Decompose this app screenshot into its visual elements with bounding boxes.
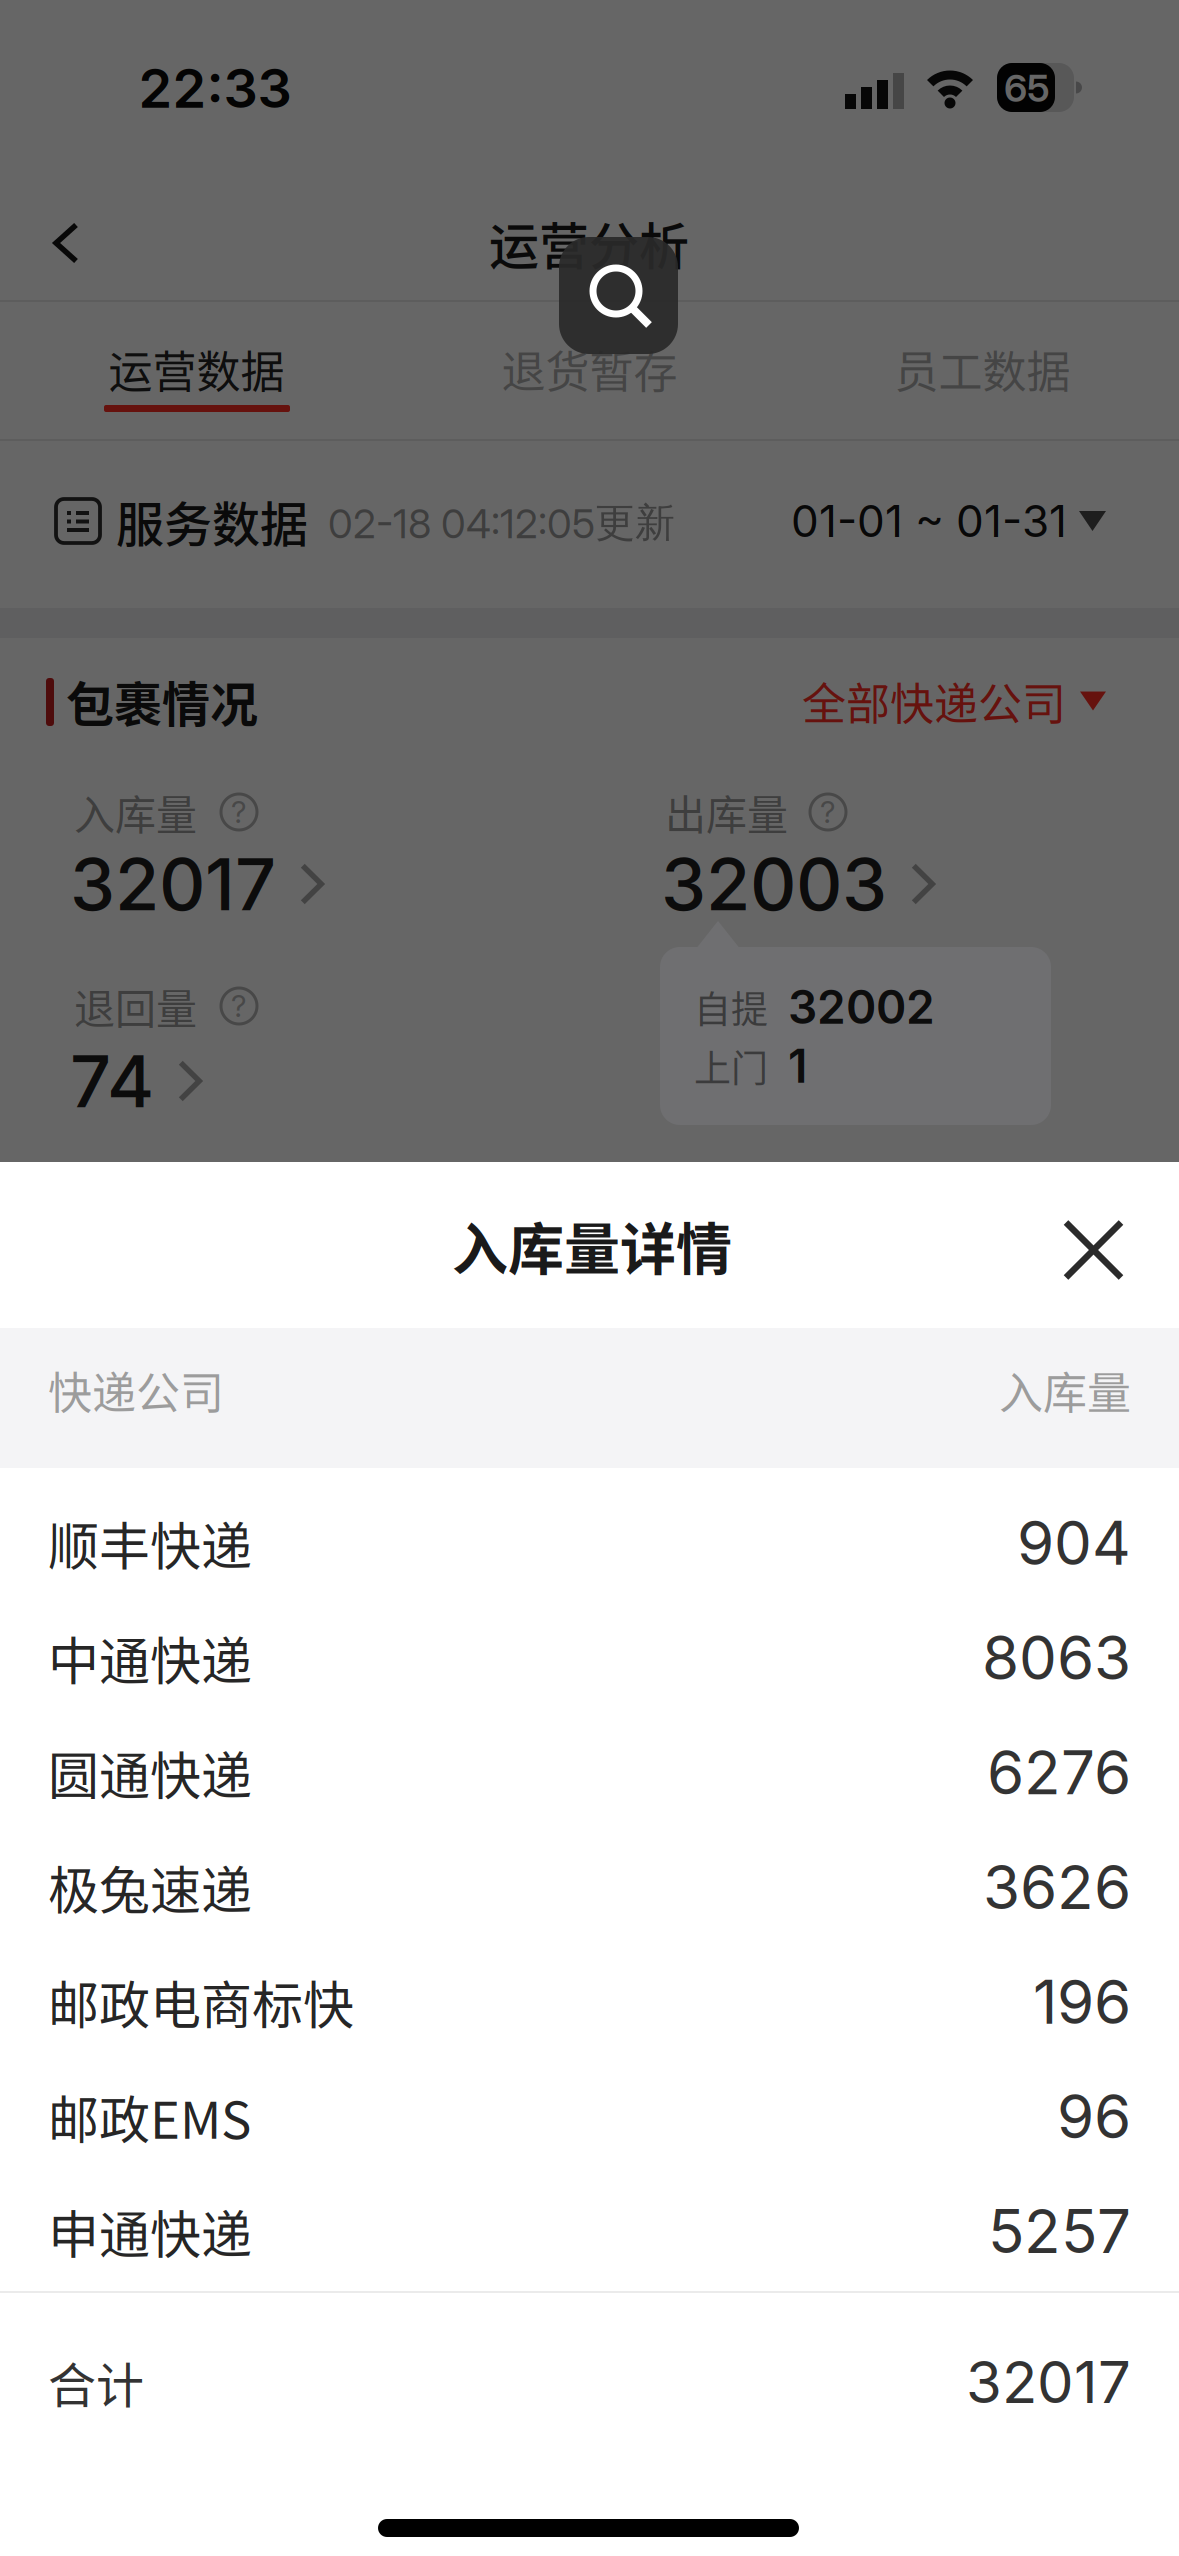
staticText: ? — [820, 794, 836, 830]
staticText: 邮政EMS — [48, 2080, 251, 2153]
button[interactable]: 返回 — [39, 208, 93, 278]
staticText: 出库量 — [665, 782, 788, 842]
button[interactable]: 说明 — [807, 791, 849, 833]
staticText: 32017 — [70, 840, 276, 927]
staticText: 运营分析 — [489, 207, 689, 279]
staticText: 3626 — [983, 1851, 1131, 1923]
staticText: 全部快递公司 — [802, 669, 1066, 733]
staticText: 自提 — [694, 980, 768, 1034]
staticText: ? — [231, 794, 247, 830]
staticText: 邮政电商标快 — [48, 1965, 354, 2039]
button[interactable]: 搜索 — [559, 237, 678, 354]
button[interactable]: 说明 — [218, 985, 260, 1027]
button[interactable]: 说明 — [218, 791, 260, 833]
staticText: 极兔速递 — [48, 1850, 252, 1924]
staticText: 中通快递 — [48, 1621, 252, 1695]
staticText: 1 — [788, 1038, 807, 1094]
staticText: 22:33 — [138, 55, 291, 121]
staticText: 65 — [1004, 65, 1050, 111]
staticText: 196 — [1033, 1965, 1131, 2038]
button[interactable]: 退货暂存 — [439, 304, 739, 434]
staticText: 入库量 — [999, 1358, 1131, 1422]
staticText: 32017 — [966, 2347, 1131, 2417]
staticText: 96 — [1057, 2080, 1131, 2153]
staticText: 顺丰快递 — [48, 1506, 252, 1580]
staticText: 904 — [1017, 1507, 1131, 1579]
staticText: 74 — [70, 1037, 154, 1124]
staticText: 8063 — [982, 1621, 1131, 1694]
staticText: 32003 — [661, 840, 887, 927]
button[interactable]: 32017 — [70, 819, 490, 949]
staticText: 快递公司 — [48, 1358, 224, 1422]
staticText: 32002 — [788, 979, 935, 1035]
staticText: 圆通快递 — [48, 1735, 252, 1809]
staticText: 入库量详情 — [452, 1204, 732, 1286]
staticText: ? — [231, 988, 247, 1024]
button[interactable]: 关闭 — [1054, 1210, 1133, 1289]
staticText: 退货暂存 — [501, 337, 677, 401]
staticText: 01-01 ~ 01-31 — [791, 494, 1067, 548]
staticText: 上门 — [694, 1039, 768, 1093]
button[interactable]: 01-01 ~ 01-31 — [686, 461, 1106, 581]
staticText: 服务数据 — [116, 486, 308, 556]
staticText: 02-18 04:12:05更新 — [328, 498, 675, 548]
staticText: 员工数据 — [894, 337, 1070, 401]
button[interactable]: 员工数据 — [832, 304, 1132, 434]
staticText: 合计 — [48, 2347, 144, 2417]
button[interactable]: 74 — [70, 1016, 490, 1146]
staticText: 申通快递 — [48, 2194, 252, 2268]
staticText: 包裹情况 — [66, 666, 258, 736]
button[interactable]: 运营数据 — [46, 304, 346, 434]
staticText: 运营数据 — [108, 337, 284, 401]
button[interactable]: 全部快递公司 — [646, 641, 1106, 761]
staticText: 入库量 — [74, 782, 197, 842]
button[interactable]: 32003 — [661, 819, 1081, 949]
staticText: 6276 — [987, 1736, 1131, 1809]
staticText: 5257 — [988, 2195, 1131, 2267]
staticText: 退回量 — [74, 976, 197, 1036]
